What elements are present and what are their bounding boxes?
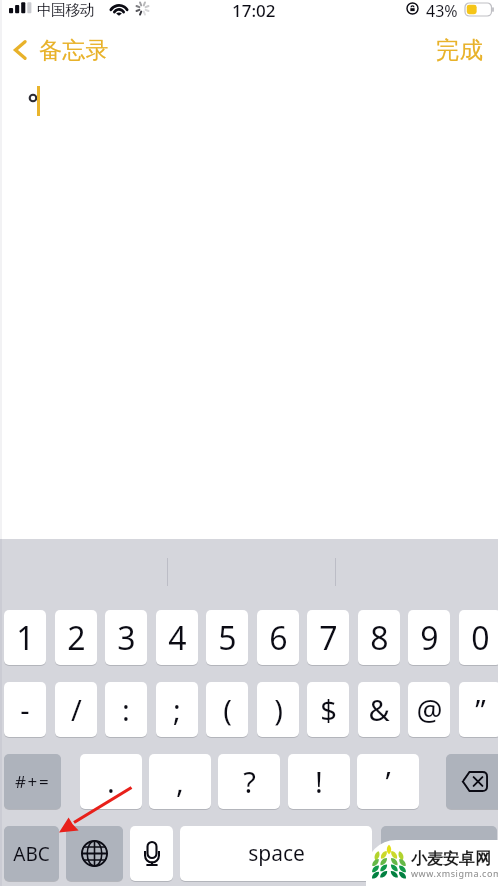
staticText: & <box>368 690 390 729</box>
staticText: 换行 <box>420 842 458 866</box>
staticText: 7 <box>319 616 338 660</box>
button[interactable]: 9 <box>408 610 450 665</box>
button[interactable]: ! <box>288 754 350 809</box>
button[interactable]: 备忘录 <box>6 28 119 72</box>
button[interactable]: / <box>55 682 97 737</box>
button[interactable]: 7 <box>307 610 349 665</box>
staticText: - <box>20 690 30 729</box>
button[interactable]: 6 <box>257 610 299 665</box>
button[interactable]: 完成 <box>420 28 498 72</box>
staticText: 8 <box>370 616 389 660</box>
button[interactable]: & <box>358 682 400 737</box>
staticText: . <box>107 762 115 801</box>
staticText: 6 <box>269 616 288 660</box>
staticText: 1 <box>16 616 35 660</box>
button[interactable]: ( <box>206 682 248 737</box>
button[interactable]: Delete <box>446 754 498 809</box>
button[interactable]: Dictation <box>130 826 173 881</box>
button[interactable]: : <box>105 682 147 737</box>
staticText: 43% <box>426 0 458 22</box>
button[interactable]: , <box>149 754 211 809</box>
staticText: 备忘录 <box>39 36 109 65</box>
staticText: www.xmsigma.com <box>411 867 498 879</box>
staticText: , <box>176 762 184 801</box>
staticText: 0 <box>471 616 490 660</box>
staticText: ” <box>475 690 486 729</box>
staticText: #+= <box>15 770 51 793</box>
button[interactable]: 5 <box>206 610 248 665</box>
button[interactable]: 4 <box>156 610 198 665</box>
button[interactable]: 换行 <box>381 826 497 881</box>
staticText: : <box>122 690 130 729</box>
staticText: ) <box>274 690 283 729</box>
staticText: 17:02 <box>232 0 276 22</box>
staticText: 4 <box>168 616 187 660</box>
button[interactable]: 0 <box>459 610 498 665</box>
button[interactable]: #+= <box>4 754 61 809</box>
button[interactable]: ? <box>218 754 280 809</box>
button[interactable]: 8 <box>358 610 400 665</box>
staticText: / <box>71 690 82 729</box>
staticText: @ <box>416 690 443 729</box>
button[interactable]: ’ <box>357 754 419 809</box>
button[interactable]: @ <box>408 682 450 737</box>
staticText: space <box>248 839 305 868</box>
staticText: 9 <box>420 616 439 660</box>
button[interactable]: 2 <box>55 610 97 665</box>
button[interactable]: ) <box>257 682 299 737</box>
staticText: ( <box>223 690 232 729</box>
staticText: 完成 <box>436 35 483 65</box>
button[interactable]: . <box>80 754 142 809</box>
button[interactable]: ; <box>156 682 198 737</box>
button[interactable]: space <box>180 826 372 881</box>
staticText: ! <box>315 762 323 801</box>
staticText: 2 <box>67 616 86 660</box>
button[interactable]: ABC <box>4 826 59 881</box>
staticText: 3 <box>117 616 136 660</box>
button[interactable]: 1 <box>4 610 46 665</box>
staticText: 小麦安卓网 <box>411 849 491 869</box>
button[interactable]: $ <box>307 682 349 737</box>
staticText: $ <box>320 690 337 729</box>
staticText: ’ <box>385 762 391 801</box>
staticText: ABC <box>13 841 50 867</box>
staticText: 中国移动 <box>37 1 94 20</box>
button[interactable]: 3 <box>105 610 147 665</box>
button[interactable]: - <box>4 682 46 737</box>
staticText: ; <box>173 690 181 729</box>
button[interactable]: Switch language <box>66 826 123 881</box>
button[interactable]: ” <box>459 682 498 737</box>
staticText: ? <box>243 762 256 801</box>
staticText: 5 <box>218 616 237 660</box>
